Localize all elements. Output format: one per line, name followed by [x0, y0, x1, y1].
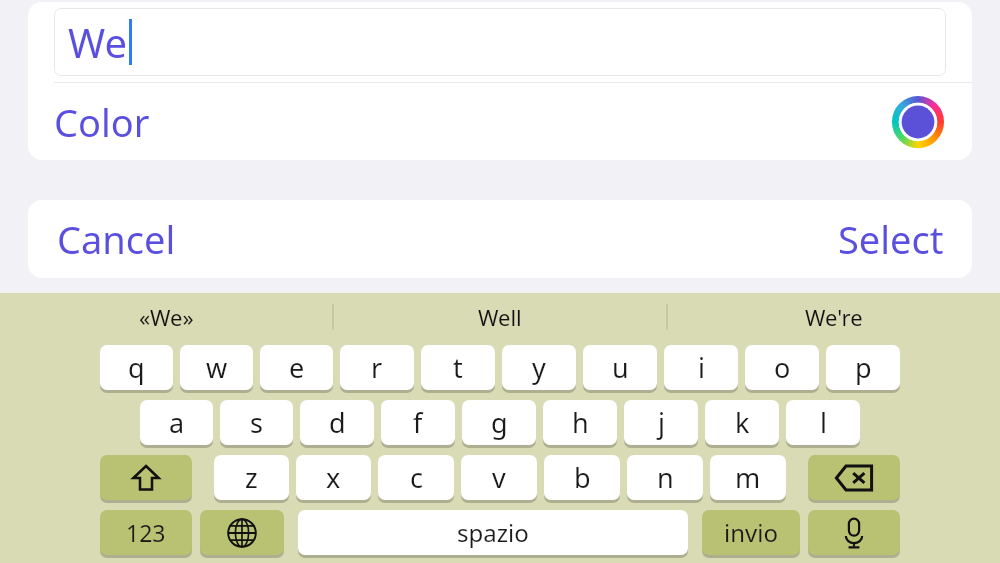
button[interactable]: s: [220, 400, 293, 445]
staticText: Well: [478, 302, 522, 332]
button[interactable]: d: [300, 400, 374, 445]
button[interactable]: a: [140, 400, 213, 445]
button[interactable]: e: [260, 345, 333, 390]
button[interactable]: t: [421, 345, 495, 390]
button[interactable]: [808, 455, 900, 500]
staticText: We: [68, 15, 127, 69]
button[interactable]: g: [462, 400, 536, 445]
button[interactable]: «We»: [0, 293, 332, 341]
staticText: u: [612, 349, 629, 386]
staticText: 123: [126, 517, 166, 548]
button[interactable]: Well: [334, 293, 666, 341]
other: Backspace: [808, 455, 900, 503]
staticText: i: [698, 349, 705, 386]
button[interactable]: v: [461, 455, 537, 500]
staticText: n: [657, 459, 674, 496]
button[interactable]: p: [826, 345, 900, 390]
button[interactable]: [100, 455, 192, 500]
staticText: a: [169, 404, 185, 441]
button[interactable]: 123: [100, 510, 192, 555]
staticText: x: [326, 459, 341, 496]
button[interactable]: i: [664, 345, 738, 390]
staticText: v: [492, 459, 506, 496]
staticText: «We»: [139, 302, 194, 332]
staticText: Select: [838, 213, 944, 265]
staticText: p: [855, 349, 872, 386]
staticText: e: [289, 349, 305, 386]
staticText: q: [128, 349, 145, 386]
staticText: o: [774, 349, 791, 386]
staticText: h: [572, 404, 589, 441]
staticText: We're: [805, 302, 863, 332]
staticText: r: [371, 349, 383, 386]
staticText: s: [250, 404, 263, 441]
button[interactable]: y: [502, 345, 576, 390]
button[interactable]: [808, 510, 900, 555]
staticText: Color: [54, 96, 150, 148]
button[interactable]: h: [543, 400, 617, 445]
other: Shift: [100, 455, 192, 503]
button[interactable]: Cancel: [28, 200, 500, 278]
button[interactable]: n: [627, 455, 703, 500]
staticText: y: [532, 349, 546, 386]
button[interactable]: u: [583, 345, 657, 390]
button[interactable]: invio: [702, 510, 800, 555]
staticText: f: [413, 404, 423, 441]
button[interactable]: j: [624, 400, 698, 445]
button[interactable]: We: [54, 8, 946, 76]
other: Change keyboard: [200, 510, 284, 558]
staticText: j: [658, 404, 665, 441]
button[interactable]: q: [100, 345, 173, 390]
staticText: w: [206, 349, 228, 386]
button[interactable]: Pick color: [892, 96, 944, 148]
button[interactable]: b: [544, 455, 620, 500]
staticText: m: [735, 459, 761, 496]
button[interactable]: [200, 510, 284, 555]
button[interactable]: Color: [28, 83, 972, 160]
staticText: k: [735, 404, 750, 441]
staticText: b: [574, 459, 591, 496]
button[interactable]: m: [710, 455, 786, 500]
button[interactable]: r: [340, 345, 414, 390]
staticText: d: [329, 404, 346, 441]
button[interactable]: k: [705, 400, 779, 445]
staticText: l: [820, 404, 827, 441]
staticText: spazio: [457, 516, 529, 549]
button[interactable]: o: [745, 345, 819, 390]
staticText: c: [410, 459, 423, 496]
button[interactable]: l: [786, 400, 860, 445]
staticText: z: [245, 459, 258, 496]
staticText: Cancel: [57, 213, 176, 265]
button[interactable]: Select: [500, 200, 972, 278]
button[interactable]: z: [214, 455, 289, 500]
staticText: g: [491, 404, 508, 441]
button[interactable]: c: [378, 455, 454, 500]
button[interactable]: We're: [668, 293, 1000, 341]
staticText: t: [453, 349, 463, 386]
other: Dictate: [808, 510, 900, 558]
button[interactable]: spazio: [298, 510, 688, 555]
button[interactable]: f: [381, 400, 455, 445]
button[interactable]: x: [296, 455, 371, 500]
button[interactable]: w: [180, 345, 253, 390]
staticText: invio: [724, 516, 778, 549]
